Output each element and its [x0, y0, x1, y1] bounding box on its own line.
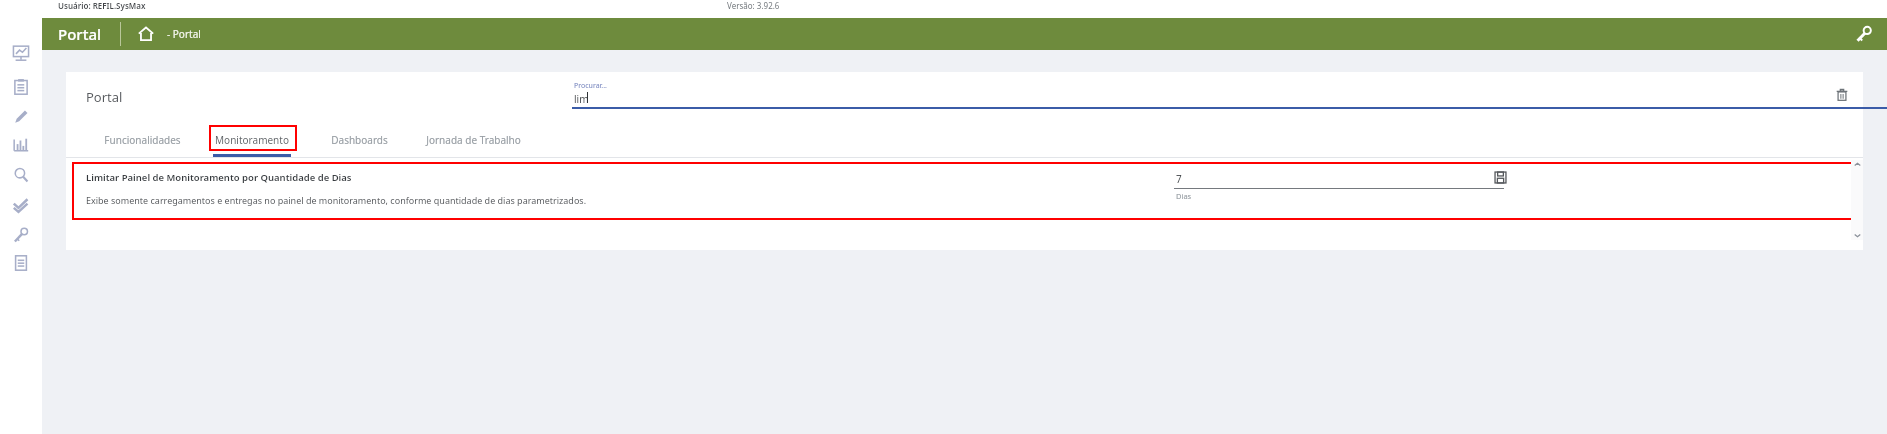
button[interactable]: Scroll down — [1854, 233, 1861, 238]
staticText: lim — [574, 92, 589, 106]
staticText: Exibe somente carregamentos e entregas n… — [86, 194, 587, 206]
button[interactable]: Edit — [12, 108, 30, 126]
button[interactable]: Documents — [12, 254, 30, 272]
button[interactable]: Approvals — [12, 196, 30, 214]
button[interactable]: Account — [1855, 25, 1873, 43]
staticText: Versão: 3.92.6 — [727, 0, 780, 11]
staticText: - Portal — [167, 27, 201, 41]
staticText: Portal — [58, 24, 102, 44]
staticText: Portal — [86, 88, 123, 106]
button[interactable]: Jornada de Trabalho — [423, 122, 523, 158]
button[interactable]: Reports — [12, 44, 30, 62]
staticText: Limitar Painel de Monitoramento por Quan… — [86, 171, 352, 184]
staticText: 7 — [1176, 172, 1182, 186]
staticText: Procurar... — [574, 81, 607, 91]
button[interactable]: Clear search — [1835, 88, 1849, 102]
button[interactable]: Monitoramento — [213, 122, 291, 158]
button[interactable]: Scroll up — [1854, 162, 1861, 167]
button[interactable]: Search — [12, 166, 30, 184]
staticText: Dias — [1176, 191, 1192, 201]
staticText: Funcionalidades — [104, 133, 181, 147]
button[interactable]: Home — [137, 25, 155, 43]
staticText: Monitoramento — [215, 133, 289, 147]
staticText: Dashboards — [331, 133, 388, 147]
button[interactable]: Analytics — [12, 136, 30, 154]
button[interactable]: Tools — [12, 226, 30, 244]
staticText: Usuário: REFIL.SysMax — [58, 0, 146, 11]
button[interactable]: Tasks — [12, 78, 30, 96]
staticText: Jornada de Trabalho — [426, 133, 521, 147]
button[interactable]: Funcionalidades — [102, 122, 182, 158]
button[interactable]: Dashboards — [328, 122, 390, 158]
button[interactable]: Save — [1494, 171, 1507, 184]
